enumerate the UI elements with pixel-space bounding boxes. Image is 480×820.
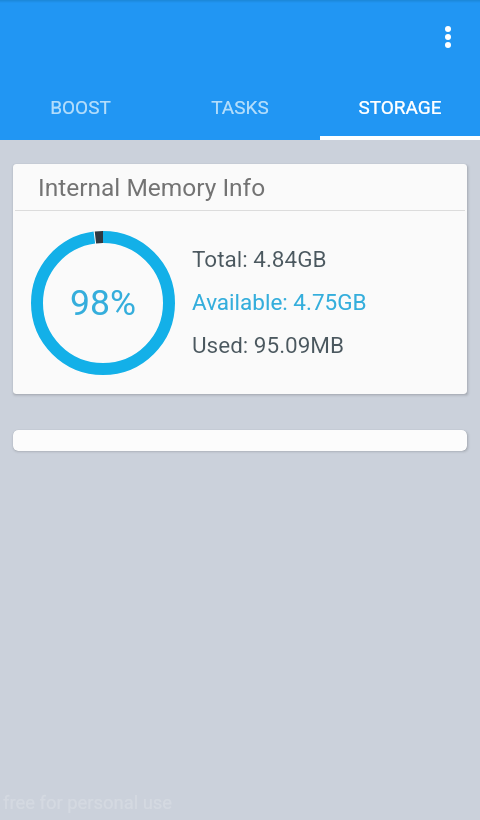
button[interactable]: BOOST — [0, 83, 160, 131]
button[interactable]: More options — [424, 13, 472, 61]
staticText: Available: 4.75GB — [192, 289, 367, 315]
staticText: BOOST — [50, 96, 111, 118]
button[interactable]: TASKS — [160, 83, 320, 131]
staticText: STORAGE — [358, 96, 442, 118]
staticText: Internal Memory Info — [38, 173, 266, 202]
staticText: Total: 4.84GB — [192, 246, 327, 272]
staticText: Used: 95.09MB — [192, 332, 345, 358]
staticText: TASKS — [211, 96, 269, 118]
staticText: 98% — [70, 282, 136, 324]
button[interactable]: STORAGE — [320, 83, 480, 131]
staticText: free for personal use — [3, 792, 173, 814]
